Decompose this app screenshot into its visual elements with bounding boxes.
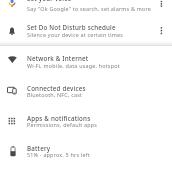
staticText: Battery (27, 144, 51, 152)
staticText: Set Do Not Disturb schedule (27, 23, 116, 31)
button[interactable] (0, 136, 172, 166)
staticText: 51% - approx. 5 hrs left (27, 151, 90, 158)
button[interactable] (0, 14, 172, 45)
staticText: Apps & notifications (27, 114, 91, 122)
staticText: Wi-Fi, mobile, data usage, hotspot (27, 62, 120, 69)
staticText: Say "Ok Google" to search, set alarms & … (27, 5, 151, 12)
staticText: Silence your device at certain times (27, 31, 124, 38)
button[interactable] (0, 75, 172, 105)
button[interactable] (0, 0, 172, 14)
staticText: Network & Internet (27, 54, 89, 62)
staticText: Bluetooth, NFC, cast (27, 91, 83, 98)
staticText: Connected devices (27, 84, 86, 92)
button[interactable] (0, 105, 172, 136)
staticText: Set your voice (27, 0, 72, 2)
button[interactable] (0, 45, 172, 75)
staticText: Permissions, default apps (27, 121, 98, 128)
